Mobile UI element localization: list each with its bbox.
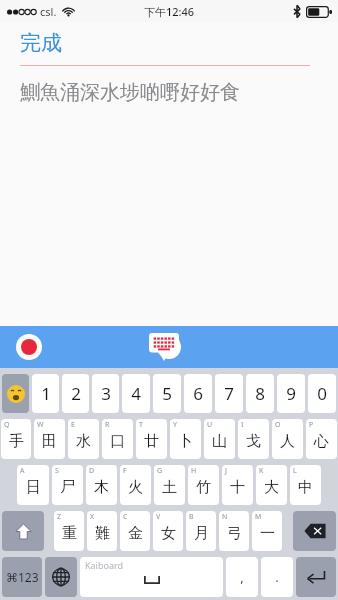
button[interactable]: 2	[62, 374, 89, 413]
staticText: 心	[314, 432, 329, 451]
staticText: T	[139, 420, 143, 430]
staticText: P	[309, 420, 314, 430]
staticText: Q	[4, 420, 10, 430]
button[interactable]: 5	[153, 374, 181, 413]
button[interactable]: J	[222, 465, 253, 505]
staticText: B	[189, 512, 194, 522]
staticText: 廿	[144, 432, 159, 451]
button[interactable]: M	[252, 511, 282, 551]
staticText: 1	[41, 382, 51, 405]
button[interactable]: Return	[296, 557, 336, 597]
button[interactable]: 4	[122, 374, 150, 413]
staticText: 女	[161, 524, 176, 543]
button[interactable]: V	[153, 511, 183, 551]
button[interactable]: Backspace	[293, 511, 336, 551]
staticText: 水	[76, 432, 91, 451]
staticText: C	[123, 512, 128, 522]
button[interactable]: 8	[246, 374, 274, 413]
button[interactable]: Language	[16, 334, 42, 360]
button[interactable]: Space	[80, 557, 223, 597]
staticText: 9	[286, 382, 296, 405]
staticText: V	[156, 512, 161, 522]
button[interactable]: 1	[32, 374, 59, 413]
staticText: F	[123, 466, 127, 476]
button[interactable]: Q	[1, 419, 31, 459]
staticText: .	[275, 568, 279, 586]
staticText: 0	[317, 382, 327, 405]
staticText: 難	[95, 524, 110, 543]
staticText: 十	[230, 478, 245, 497]
staticText: H	[191, 466, 197, 476]
staticText: K	[259, 466, 264, 476]
staticText: 7	[224, 382, 234, 405]
button[interactable]: ,	[226, 557, 258, 597]
button[interactable]: 7	[215, 374, 243, 413]
staticText: J	[225, 466, 227, 476]
button[interactable]: P	[306, 419, 337, 459]
staticText: 金	[128, 524, 143, 543]
button[interactable]: Switch keyboard	[45, 557, 77, 597]
button[interactable]: Shift	[2, 511, 44, 551]
button[interactable]: T	[136, 419, 167, 459]
staticText: 土	[162, 478, 177, 497]
staticText: A	[20, 466, 25, 476]
staticText: 人	[280, 432, 295, 451]
button[interactable]: 完成	[18, 28, 64, 58]
staticText: 手	[9, 432, 24, 451]
staticText: 尸	[60, 478, 75, 497]
staticText: E	[71, 420, 75, 430]
button[interactable]: W	[34, 419, 65, 459]
button[interactable]: L	[290, 465, 321, 505]
staticText: N	[222, 512, 228, 522]
staticText: ,	[240, 568, 244, 586]
button[interactable]: Hide keyboard	[149, 333, 179, 361]
staticText: 3	[101, 382, 111, 405]
staticText: 8	[255, 382, 265, 405]
button[interactable]: R	[102, 419, 133, 459]
staticText: 4	[131, 382, 141, 405]
button[interactable]: B	[186, 511, 216, 551]
button[interactable]: 9	[277, 374, 305, 413]
button[interactable]: I	[238, 419, 269, 459]
button[interactable]: U	[204, 419, 235, 459]
staticText: 火	[128, 478, 143, 497]
staticText: Y	[173, 420, 177, 430]
button[interactable]: K	[256, 465, 287, 505]
staticText: 山	[212, 432, 227, 451]
staticText: U	[207, 420, 213, 430]
staticText: 下午12:46	[144, 4, 195, 19]
button[interactable]: A	[17, 465, 49, 505]
button[interactable]: Input mode A	[157, 335, 181, 359]
button[interactable]: 6	[184, 374, 212, 413]
staticText: csl.	[40, 4, 57, 19]
staticText: 完成	[20, 30, 62, 56]
button[interactable]: E	[68, 419, 99, 459]
button[interactable]: H	[188, 465, 219, 505]
staticText: 2	[71, 382, 81, 405]
button[interactable]: D	[86, 465, 117, 505]
staticText: D	[89, 466, 95, 476]
button[interactable]: .	[261, 557, 293, 597]
button[interactable]: X	[87, 511, 117, 551]
button[interactable]: ⌘123	[2, 557, 42, 597]
button[interactable]: Z	[54, 511, 84, 551]
button[interactable]: O	[272, 419, 303, 459]
staticText: 5	[162, 382, 172, 405]
button[interactable]: 0	[308, 374, 336, 413]
button[interactable]: F	[120, 465, 151, 505]
staticText: 木	[94, 478, 109, 497]
button[interactable]: Emoji	[2, 374, 29, 413]
button[interactable]: C	[120, 511, 150, 551]
staticText: W	[37, 420, 44, 430]
staticText: 竹	[196, 478, 211, 497]
staticText: 戈	[246, 432, 261, 451]
staticText: S	[55, 466, 59, 476]
button[interactable]: G	[154, 465, 185, 505]
button[interactable]: N	[219, 511, 249, 551]
button[interactable]: Y	[170, 419, 201, 459]
staticText: 卜	[178, 432, 193, 451]
button[interactable]: 3	[92, 374, 119, 413]
staticText: 重	[62, 524, 77, 543]
button[interactable]: S	[52, 465, 83, 505]
staticText: M	[255, 512, 262, 522]
